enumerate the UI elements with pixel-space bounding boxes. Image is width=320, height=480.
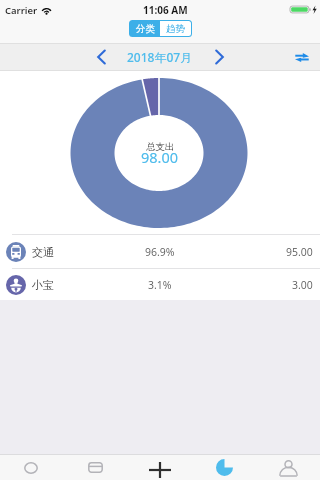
button[interactable]: Charts (192, 455, 256, 480)
staticText: 11:06 AM (143, 3, 188, 17)
staticText: 3.1% (148, 278, 172, 292)
staticText: 95.00 (286, 245, 313, 259)
staticText: 分类 (136, 23, 155, 35)
staticText: 总支出 (146, 141, 175, 153)
staticText: 2018年07月 (127, 49, 193, 65)
button[interactable]: Next month (206, 44, 232, 70)
staticText: 98.00 (141, 147, 179, 167)
staticText: 交通 (32, 245, 54, 259)
staticText: 96.9% (145, 245, 175, 259)
button[interactable]: 趋势 (160, 21, 191, 36)
button[interactable]: 分类 (130, 21, 160, 36)
staticText: 3.00 (292, 278, 313, 292)
button[interactable]: Bills (64, 455, 128, 480)
staticText: Carrier (5, 4, 38, 17)
button[interactable]: Sort order (290, 45, 314, 69)
button[interactable]: Add record (128, 455, 192, 480)
button[interactable]: 小宝 (0, 269, 320, 300)
button[interactable]: Home (0, 455, 64, 480)
button[interactable]: Previous month (88, 44, 114, 70)
button[interactable]: Profile (256, 455, 320, 480)
staticText: 趋势 (166, 23, 185, 35)
staticText: 小宝 (32, 278, 54, 292)
button[interactable]: 交通 (0, 235, 320, 268)
